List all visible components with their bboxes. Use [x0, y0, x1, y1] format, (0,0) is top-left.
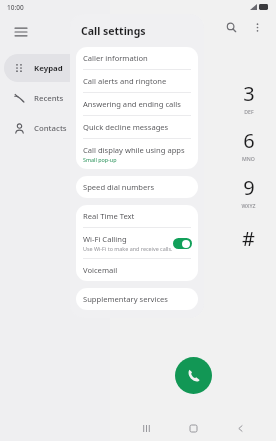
- staticText: 10:00: [7, 3, 24, 12]
- staticText: MNO: [242, 155, 255, 162]
- staticText: WXYZ: [241, 202, 256, 209]
- button[interactable]: Speed dial numbers: [76, 176, 198, 198]
- button[interactable]: #: [221, 215, 276, 262]
- staticText: Call display while using apps: [83, 145, 185, 155]
- staticText: Voicemail: [83, 265, 118, 275]
- staticText: Small pop-up: [83, 156, 117, 163]
- staticText: Supplementary services: [83, 294, 168, 304]
- staticText: 4: [132, 127, 144, 154]
- staticText: PQRS: [131, 202, 145, 209]
- button[interactable]: Search: [218, 14, 244, 40]
- button[interactable]: Wi-Fi Calling: [76, 228, 198, 258]
- staticText: ✳: [130, 227, 147, 250]
- staticText: ABC: [189, 108, 200, 115]
- staticText: Call settings: [81, 24, 146, 38]
- button[interactable]: Quick decline messages: [76, 116, 198, 138]
- button[interactable]: Home: [182, 417, 204, 439]
- button[interactable]: 7: [110, 168, 166, 215]
- button[interactable]: ✳: [110, 215, 166, 262]
- button[interactable]: Recent apps: [135, 417, 157, 439]
- button[interactable]: Supplementary services: [76, 288, 198, 310]
- staticText: Use Wi-Fi to make and receive calls.: [83, 245, 173, 252]
- staticText: 6: [243, 127, 255, 154]
- staticText: Answering and ending calls: [83, 99, 181, 109]
- staticText: 5: [188, 127, 200, 154]
- button[interactable]: Voicemail: [76, 259, 198, 281]
- button[interactable]: Call: [175, 357, 212, 394]
- button[interactable]: [173, 238, 192, 249]
- staticText: Speed dial numbers: [83, 182, 155, 192]
- staticText: 3: [243, 80, 255, 107]
- button[interactable]: 3: [221, 74, 276, 121]
- button[interactable]: 6: [221, 121, 276, 168]
- button[interactable]: 5: [166, 121, 221, 168]
- button[interactable]: Caller information: [76, 47, 198, 69]
- staticText: #: [242, 225, 255, 252]
- button[interactable]: Back: [229, 417, 251, 439]
- button[interactable]: 9: [221, 168, 276, 215]
- staticText: 8: [188, 174, 200, 201]
- button[interactable]: 8: [166, 168, 221, 215]
- button[interactable]: More options: [244, 14, 270, 40]
- button[interactable]: 0: [166, 215, 221, 262]
- staticText: Wi-Fi Calling: [83, 234, 127, 244]
- staticText: 2: [188, 80, 200, 107]
- staticText: Keypad: [34, 63, 63, 74]
- staticText: Recents: [34, 93, 64, 104]
- staticText: Caller information: [83, 53, 148, 63]
- button[interactable]: 4: [110, 121, 166, 168]
- button[interactable]: Keypad: [4, 54, 106, 82]
- staticText: 7: [132, 174, 144, 201]
- button[interactable]: Recents: [4, 84, 106, 112]
- staticText: Quick decline messages: [83, 122, 169, 132]
- staticText: 0: [188, 221, 200, 248]
- staticText: TUV: [189, 202, 199, 209]
- button[interactable]: Real Time Text: [76, 205, 198, 227]
- button[interactable]: 1: [110, 74, 166, 121]
- staticText: 9: [243, 174, 255, 201]
- button[interactable]: 2: [166, 74, 221, 121]
- button[interactable]: Answering and ending calls: [76, 93, 198, 115]
- staticText: Contacts: [34, 123, 67, 134]
- button[interactable]: Call display while using apps: [76, 139, 198, 169]
- button[interactable]: Contacts: [4, 114, 106, 142]
- staticText: Call alerts and ringtone: [83, 76, 167, 86]
- staticText: DEF: [244, 108, 254, 115]
- button[interactable]: Call alerts and ringtone: [76, 70, 198, 92]
- staticText: 1: [132, 84, 144, 111]
- staticText: Real Time Text: [83, 211, 135, 221]
- button[interactable]: Open navigation menu: [6, 17, 36, 47]
